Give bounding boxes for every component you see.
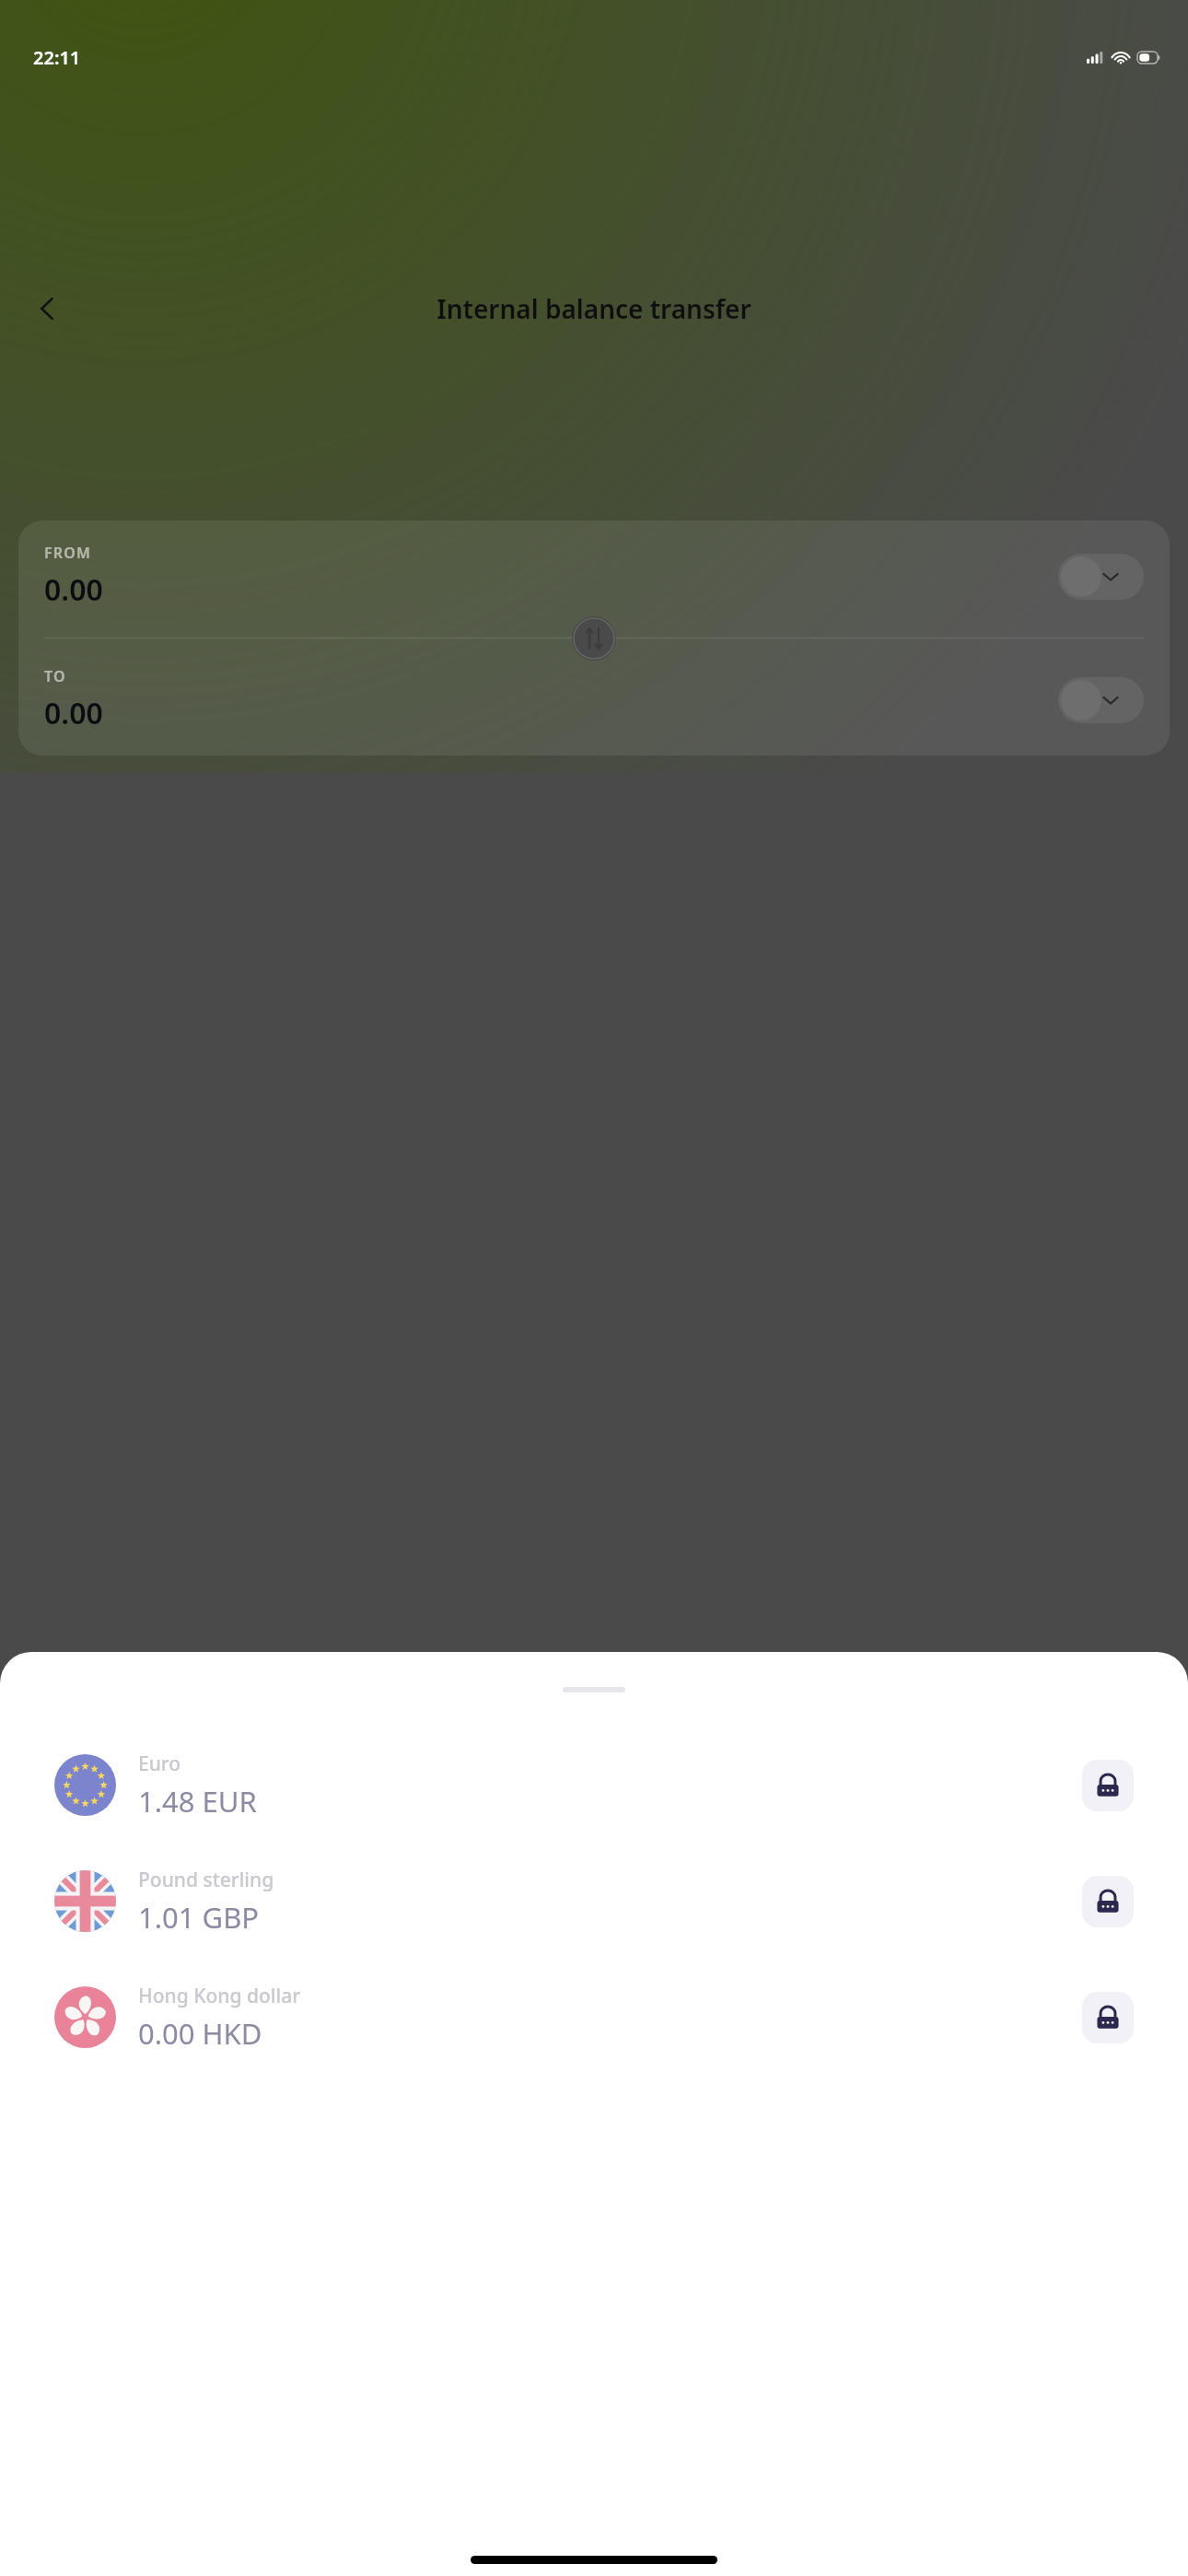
button[interactable]: Locked <box>1082 1760 1134 1811</box>
button[interactable]: Locked <box>1082 1876 1134 1927</box>
staticText: TO <box>44 666 66 686</box>
button[interactable]: Pound sterling <box>34 1853 1154 1950</box>
staticText: 0.00 <box>44 693 103 733</box>
button[interactable]: Euro <box>34 1737 1154 1833</box>
staticText: Internal balance transfer <box>437 291 751 326</box>
staticText: FROM <box>44 543 92 563</box>
button[interactable]: Back <box>18 279 77 338</box>
button[interactable]: Swap currencies <box>572 616 616 661</box>
button[interactable]: Select currency <box>1058 554 1144 600</box>
staticText: Pound sterling <box>138 1867 274 1893</box>
button[interactable]: Select currency <box>1058 677 1144 723</box>
staticText: 22:11 <box>33 45 81 70</box>
staticText: 1.48 EUR <box>138 1782 257 1821</box>
staticText: Euro <box>138 1751 181 1777</box>
staticText: Hong Kong dollar <box>138 1983 301 2009</box>
staticText: 1.01 GBP <box>138 1898 260 1937</box>
button[interactable]: Hong Kong dollar <box>34 1969 1154 2066</box>
button[interactable]: Locked <box>1082 1992 1134 2043</box>
staticText: 0.00 <box>44 569 103 610</box>
staticText: 0.00 HKD <box>138 2014 262 2053</box>
